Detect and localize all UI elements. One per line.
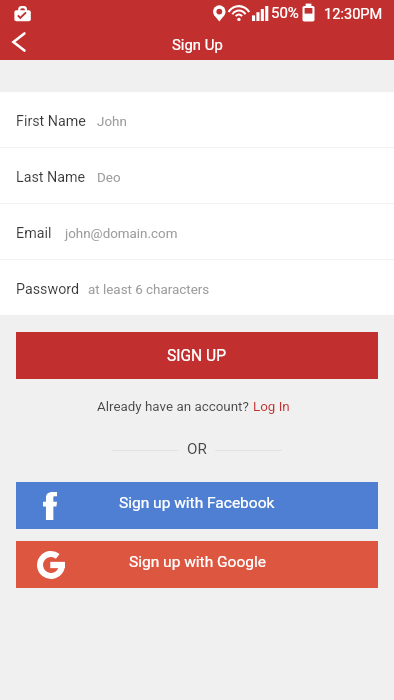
staticText: First Name bbox=[16, 113, 97, 130]
button[interactable]: Log In bbox=[253, 397, 290, 413]
staticText: Deo bbox=[97, 170, 121, 186]
staticText: Last Name bbox=[16, 169, 97, 186]
button[interactable]: First Name bbox=[0, 92, 394, 147]
staticText: Password bbox=[16, 281, 88, 298]
button[interactable]: SIGN UP bbox=[16, 332, 378, 379]
staticText: Email bbox=[16, 225, 65, 242]
button[interactable]: Last Name bbox=[0, 148, 394, 203]
staticText: john@domain.com bbox=[65, 226, 178, 242]
staticText: Sign Up bbox=[172, 36, 223, 53]
staticText: Sign up with Facebook bbox=[119, 494, 275, 512]
button[interactable]: Email bbox=[0, 204, 394, 259]
button[interactable]: Password bbox=[0, 260, 394, 315]
button[interactable]: Back bbox=[0, 24, 40, 60]
staticText: 50% bbox=[271, 4, 299, 22]
staticText: SIGN UP bbox=[167, 347, 227, 365]
staticText: John bbox=[97, 114, 127, 130]
staticText: Already have an account? bbox=[97, 399, 249, 415]
button[interactable]: Sign up with Google bbox=[16, 541, 378, 588]
staticText: Log In bbox=[253, 399, 290, 415]
staticText: at least 6 characters bbox=[88, 282, 210, 298]
staticText: 12:30PM bbox=[324, 5, 383, 22]
staticText: Sign up with Google bbox=[129, 553, 266, 571]
staticText: OR bbox=[187, 440, 207, 458]
button[interactable]: Sign up with Facebook bbox=[16, 482, 378, 529]
